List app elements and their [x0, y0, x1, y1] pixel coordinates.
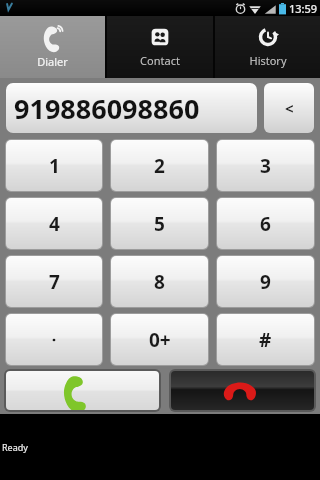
- button[interactable]: Backspace: [264, 83, 314, 133]
- button[interactable]: Dialer: [0, 16, 105, 78]
- staticText: 3: [260, 153, 271, 179]
- button[interactable]: 3: [217, 140, 314, 191]
- button[interactable]: [6, 314, 102, 365]
- staticText: 8: [154, 269, 165, 295]
- button[interactable]: 6: [217, 198, 314, 249]
- staticText: Contact: [140, 53, 180, 68]
- staticText: 1: [49, 153, 60, 179]
- staticText: <: [285, 98, 294, 118]
- button[interactable]: 9: [217, 256, 314, 307]
- button[interactable]: 0+: [111, 314, 208, 365]
- button[interactable]: Contact: [107, 16, 213, 78]
- button[interactable]: #: [217, 314, 314, 365]
- button[interactable]: 5: [111, 198, 208, 249]
- button[interactable]: 1: [6, 140, 102, 191]
- staticText: 0+: [149, 327, 171, 353]
- staticText: 7: [49, 269, 60, 295]
- button[interactable]: Call: [6, 371, 159, 410]
- staticText: 6: [260, 211, 271, 237]
- button[interactable]: 7: [6, 256, 102, 307]
- button[interactable]: 4: [6, 198, 102, 249]
- button[interactable]: 8: [111, 256, 208, 307]
- staticText: History: [249, 53, 287, 68]
- staticText: 919886098860: [14, 90, 200, 127]
- staticText: Ready: [2, 441, 28, 453]
- staticText: 2: [154, 153, 165, 179]
- staticText: 5: [154, 211, 165, 237]
- staticText: #: [259, 327, 272, 353]
- button[interactable]: History: [215, 16, 320, 78]
- button[interactable]: 919886098860: [6, 83, 257, 133]
- staticText: Dialer: [37, 54, 68, 69]
- button[interactable]: End call: [171, 371, 314, 410]
- staticText: 4: [49, 211, 60, 237]
- staticText: 13:59: [289, 1, 318, 16]
- staticText: 9: [260, 269, 271, 295]
- button[interactable]: 2: [111, 140, 208, 191]
